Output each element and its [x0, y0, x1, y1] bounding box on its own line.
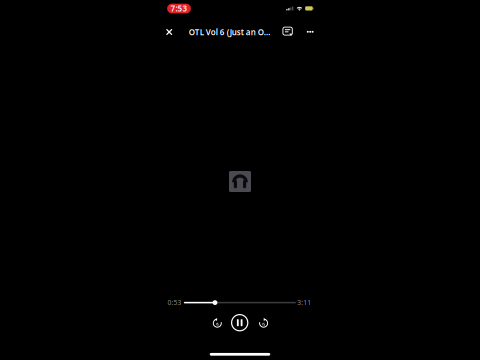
button[interactable]: Close	[159, 22, 179, 42]
button[interactable]: More	[301, 22, 319, 42]
staticText: 7:53	[170, 3, 187, 14]
staticText: OTL Vol 6 (Just an O…	[189, 27, 271, 37]
button[interactable]: Skip back 15 seconds	[207, 313, 227, 333]
button[interactable]: Transcript	[279, 22, 297, 42]
staticText: 0:53	[168, 298, 182, 307]
button[interactable]: Pause	[229, 312, 251, 334]
staticText: 3:11	[297, 298, 311, 307]
button[interactable]: Skip forward 15 seconds	[254, 313, 274, 333]
